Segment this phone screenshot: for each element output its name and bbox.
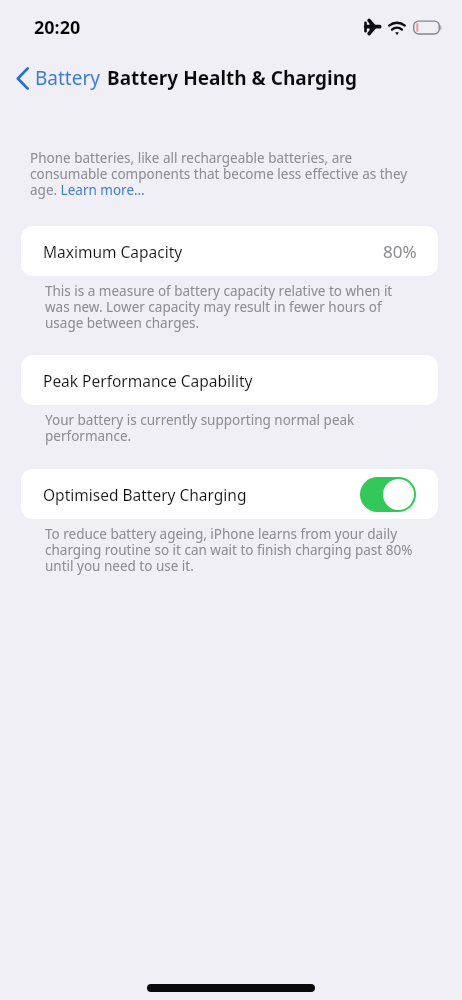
other: Aeroplane mode bbox=[364, 18, 381, 36]
other: Wi-Fi bbox=[389, 19, 405, 36]
staticText: Peak Performance Capability bbox=[43, 370, 253, 391]
staticText: Phone batteries, like all rechargeable b… bbox=[30, 150, 416, 198]
button[interactable]: Maximum Capacity bbox=[21, 226, 438, 276]
button[interactable]: Optimised Battery Charging bbox=[360, 477, 416, 512]
staticText: Your battery is currently supporting nor… bbox=[45, 412, 415, 444]
staticText: 20:20 bbox=[34, 15, 81, 40]
staticText: Maximum Capacity bbox=[43, 241, 183, 262]
staticText: 80% bbox=[383, 240, 417, 263]
other: Battery low bbox=[413, 20, 444, 35]
staticText: Optimised Battery Charging bbox=[43, 484, 247, 505]
button[interactable]: Peak Performance Capability bbox=[21, 355, 438, 405]
button[interactable]: Optimised Battery Charging bbox=[21, 469, 438, 519]
staticText: This is a measure of battery capacity re… bbox=[45, 283, 415, 331]
staticText: Battery Health & Charging bbox=[107, 65, 358, 91]
button[interactable]: Battery bbox=[8, 59, 104, 97]
staticText: To reduce battery ageing, iPhone learns … bbox=[45, 526, 415, 574]
staticText: Battery bbox=[35, 65, 100, 91]
